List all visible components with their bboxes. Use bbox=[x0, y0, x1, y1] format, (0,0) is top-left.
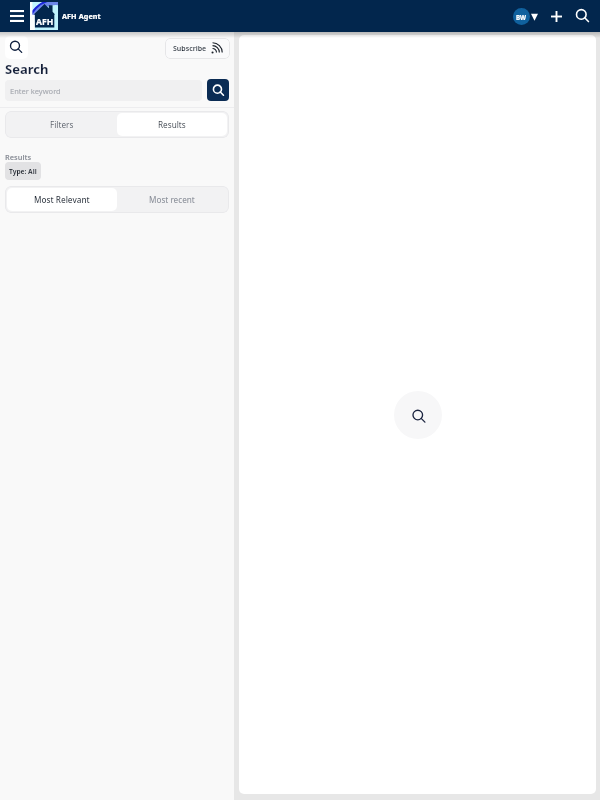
button[interactable]: Account menu bbox=[513, 5, 538, 28]
button[interactable]: Menu bbox=[6, 5, 28, 27]
staticText: Filters bbox=[50, 119, 74, 130]
staticText: Enter keyword bbox=[10, 86, 61, 96]
staticText: Most recent bbox=[149, 194, 195, 205]
button[interactable]: Enter keyword bbox=[5, 80, 202, 101]
button[interactable]: Search bbox=[5, 36, 28, 59]
staticText: Results bbox=[5, 152, 32, 162]
button[interactable]: Subscribe bbox=[165, 38, 230, 59]
button[interactable]: Most recent bbox=[117, 188, 227, 211]
button[interactable]: Search bbox=[394, 391, 442, 439]
staticText: AFH bbox=[36, 16, 54, 28]
staticText: AFH Agent bbox=[62, 11, 101, 21]
staticText: Most Relevant bbox=[34, 194, 90, 205]
button[interactable]: Results bbox=[117, 113, 227, 136]
button[interactable]: Type: All bbox=[5, 162, 41, 180]
staticText: Type: All bbox=[9, 167, 37, 176]
staticText: Search bbox=[5, 60, 49, 78]
staticText: BW bbox=[516, 13, 527, 21]
staticText: Subscribe bbox=[173, 44, 207, 54]
button[interactable]: Most Relevant bbox=[7, 188, 117, 211]
button[interactable]: Search bbox=[571, 5, 593, 27]
staticText: Results bbox=[158, 119, 186, 130]
button[interactable]: Run search bbox=[207, 79, 229, 101]
button[interactable]: Add bbox=[545, 5, 567, 27]
button[interactable]: Filters bbox=[7, 113, 117, 136]
